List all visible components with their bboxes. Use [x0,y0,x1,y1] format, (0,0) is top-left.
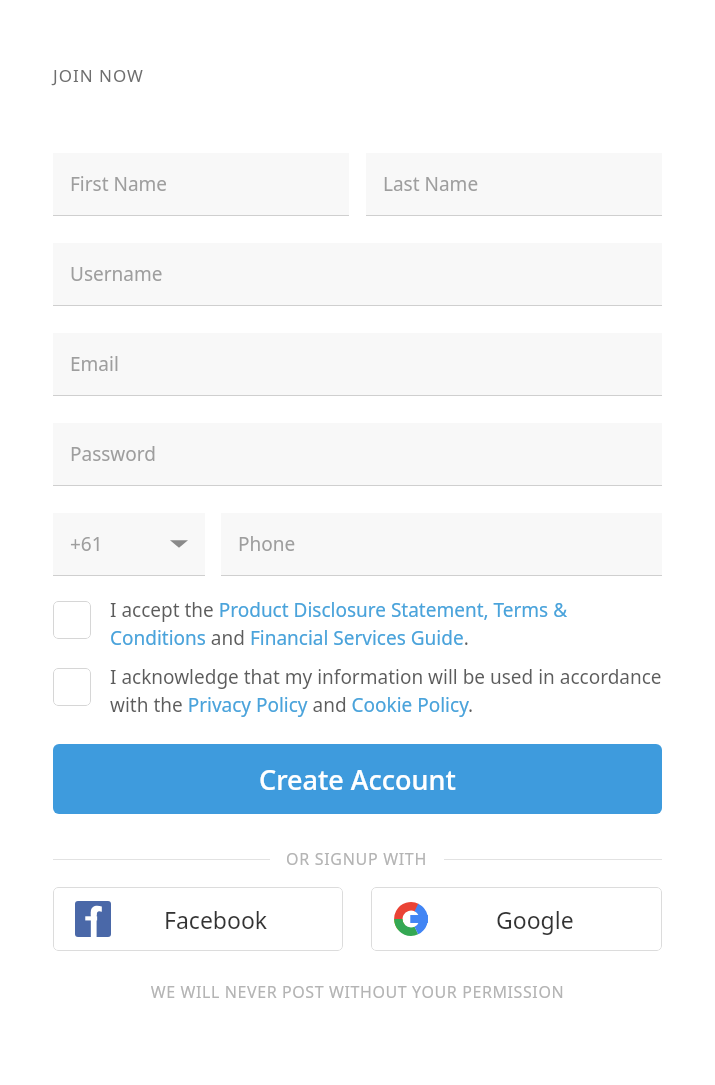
button[interactable]: Email [53,333,662,396]
button[interactable]: Facebook [53,887,343,951]
staticText: WE WILL NEVER POST WITHOUT YOUR PERMISSI… [53,981,662,1003]
button[interactable]: Google [371,887,662,951]
staticText: +61 [70,531,103,557]
button[interactable]: Last Name [366,153,662,216]
staticText: Create Account [259,761,456,798]
button[interactable]: Select country code [53,513,205,576]
button[interactable]: Checkbox [53,664,662,718]
button[interactable]: Create Account [53,744,662,814]
staticText: Google [496,904,574,935]
staticText: First Name [70,171,168,197]
staticText: Password [70,441,156,467]
staticText: Username [70,261,163,287]
staticText: I acknowledge that my information will b… [110,664,662,718]
button[interactable]: Checkbox [53,601,91,639]
staticText: Phone [238,531,296,557]
button[interactable]: Checkbox [53,668,91,706]
button[interactable]: First Name [53,153,349,216]
staticText: JOIN NOW [53,64,144,87]
button[interactable]: Username [53,243,662,306]
staticText: I accept the Product Disclosure Statemen… [110,597,662,651]
button[interactable]: Password [53,423,662,486]
button[interactable]: Checkbox [53,597,662,651]
staticText: Facebook [164,904,268,935]
staticText: Email [70,351,119,377]
button[interactable]: Phone [221,513,662,576]
staticText: OR SIGNUP WITH [286,848,428,870]
staticText: Last Name [383,171,479,197]
